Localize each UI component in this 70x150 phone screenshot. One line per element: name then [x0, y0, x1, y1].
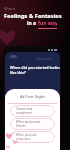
staticText: When we became friends [16, 120, 41, 128]
staticText: Share [4, 6, 16, 12]
staticText: Feelings & Fantasies [4, 12, 62, 20]
button[interactable]: When we became friends [10, 118, 55, 130]
staticText: When you look in my eyes [16, 133, 37, 141]
staticText: fun way [38, 20, 57, 27]
button[interactable]: When you look in my eyes [10, 131, 55, 143]
staticText: in a [27, 20, 38, 27]
staticText: tap to reveal [36, 57, 53, 61]
staticText: When did you started feeling like this? [10, 65, 60, 75]
button[interactable]: Choose that compliment [10, 105, 55, 117]
staticText: At First Sight [5, 94, 60, 100]
staticText: Choose that compliment [16, 107, 33, 115]
